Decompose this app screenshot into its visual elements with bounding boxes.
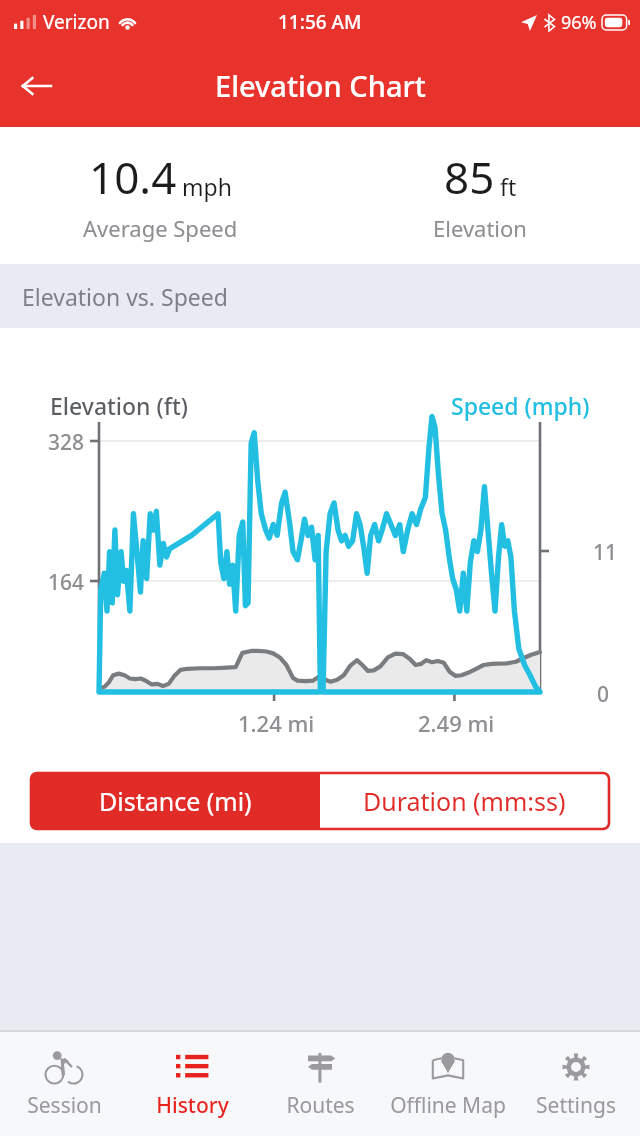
staticText: History xyxy=(156,1091,229,1120)
staticText: 2.49 mi xyxy=(418,708,495,738)
staticText: 96% xyxy=(561,10,597,35)
button[interactable]: History xyxy=(128,1032,256,1136)
staticText: 1.24 mi xyxy=(238,708,315,738)
staticText: 11:56 AM xyxy=(278,9,362,35)
staticText: Speed (mph) xyxy=(451,390,590,421)
staticText: Routes xyxy=(286,1091,355,1120)
staticText: Session xyxy=(27,1091,102,1120)
staticText: 328 xyxy=(48,428,85,457)
staticText: Elevation xyxy=(433,213,527,243)
staticText: Duration (mm:ss) xyxy=(363,784,566,818)
button[interactable]: Routes xyxy=(256,1032,384,1136)
staticText: Average Speed xyxy=(83,213,238,243)
button[interactable]: Session xyxy=(0,1032,128,1136)
staticText: Elevation (ft) xyxy=(50,390,188,421)
staticText: 0 xyxy=(597,680,610,709)
button[interactable]: Distance (mi) xyxy=(31,773,320,829)
staticText: Elevation vs. Speed xyxy=(22,281,228,312)
button[interactable]: Duration (mm:ss) xyxy=(320,773,609,829)
staticText: Settings xyxy=(536,1091,616,1120)
staticText: 164 xyxy=(48,568,85,597)
staticText: 11 xyxy=(593,538,618,567)
staticText: Distance (mi) xyxy=(99,784,252,818)
staticText: Offline Map xyxy=(390,1091,506,1120)
staticText: ft xyxy=(500,171,517,202)
staticText: Verizon xyxy=(43,9,110,35)
staticText: 10.4 xyxy=(89,147,177,207)
button[interactable]: Settings xyxy=(512,1032,640,1136)
staticText: Elevation Chart xyxy=(215,66,426,105)
staticText: mph xyxy=(182,171,232,202)
button[interactable]: Offline Map xyxy=(384,1032,512,1136)
staticText: 85 xyxy=(444,147,495,207)
button[interactable]: Back xyxy=(8,58,64,114)
